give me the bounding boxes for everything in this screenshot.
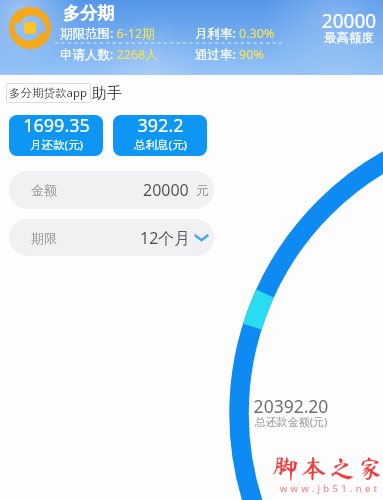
button[interactable]: 1699.35 bbox=[9, 115, 103, 156]
staticText: 1699.35 bbox=[23, 115, 90, 138]
staticText: 392.2 bbox=[137, 115, 184, 138]
staticText: 总还款金额(元) bbox=[250, 414, 332, 429]
staticText: 月利率: 0.30% bbox=[195, 25, 275, 42]
staticText: 期限范围: 6-12期 bbox=[60, 25, 155, 42]
staticText: 12个月 bbox=[140, 227, 191, 249]
staticText: 助手 bbox=[92, 84, 122, 103]
staticText: 20000 bbox=[143, 179, 189, 201]
staticText: 多分期 bbox=[63, 3, 114, 24]
staticText: 月还款(元) bbox=[30, 137, 83, 153]
staticText: 20392.20 bbox=[250, 394, 332, 418]
button[interactable]: 多分期贷款app bbox=[9, 85, 88, 101]
staticText: 元 bbox=[196, 182, 209, 198]
staticText: 期限 bbox=[31, 230, 57, 246]
button[interactable]: 金额 bbox=[9, 171, 214, 209]
button[interactable]: 392.2 bbox=[113, 115, 207, 156]
staticText: 通过率: 90% bbox=[195, 46, 264, 63]
staticText: www.jb51.net bbox=[276, 482, 383, 495]
other: Select period bbox=[194, 230, 209, 245]
staticText: 总利息(元) bbox=[134, 137, 187, 153]
staticText: 最高额度 bbox=[310, 30, 383, 46]
button[interactable]: 期限 bbox=[9, 219, 214, 256]
staticText: 金额 bbox=[31, 182, 57, 198]
staticText: 20000 bbox=[310, 8, 383, 34]
staticText: 多分期贷款app bbox=[9, 85, 88, 101]
staticText: 申请人数: 2268人 bbox=[60, 46, 158, 63]
staticText: 脚本之家 bbox=[272, 455, 383, 481]
